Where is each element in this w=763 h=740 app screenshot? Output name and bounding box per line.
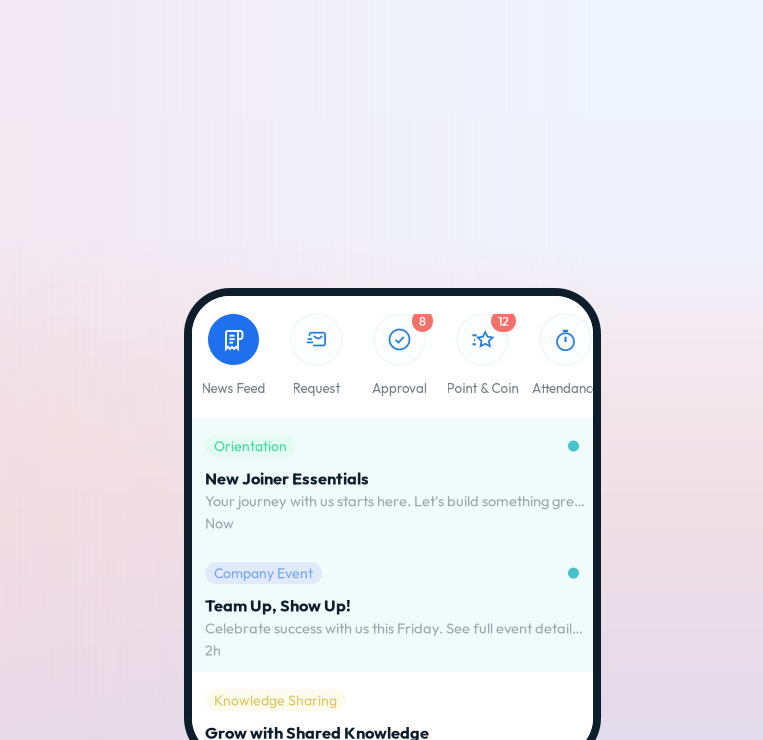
- staticText: Request: [292, 380, 340, 396]
- staticText: 2h: [205, 641, 221, 659]
- button[interactable]: Attendance: [524, 314, 607, 396]
- staticText: Company Event: [214, 564, 313, 582]
- staticText: Approval: [372, 380, 427, 396]
- button[interactable]: Knowledge Sharing: [192, 672, 593, 740]
- staticText: Team Up, Show Up!: [205, 595, 351, 616]
- staticText: Celebrate success with us this Friday. S…: [205, 619, 587, 637]
- staticText: Your journey with us starts here. Let's …: [205, 492, 587, 510]
- staticText: 12: [498, 313, 509, 329]
- button[interactable]: Request: [275, 314, 358, 396]
- button[interactable]: Orientation: [192, 418, 593, 545]
- staticText: Now: [205, 514, 234, 532]
- button[interactable]: 12: [441, 314, 524, 396]
- staticText: Orientation: [214, 437, 287, 455]
- staticText: Point & Coin: [446, 380, 518, 396]
- button[interactable]: News Feed: [192, 314, 275, 396]
- staticText: New Joiner Essentials: [205, 468, 369, 489]
- staticText: Attendance: [532, 380, 599, 396]
- button[interactable]: Company Event: [192, 545, 593, 672]
- staticText: Knowledge Sharing: [214, 691, 337, 709]
- staticText: 8: [419, 313, 426, 329]
- staticText: News Feed: [201, 380, 265, 396]
- button[interactable]: 8: [358, 314, 441, 396]
- staticText: Grow with Shared Knowledge: [205, 722, 429, 740]
